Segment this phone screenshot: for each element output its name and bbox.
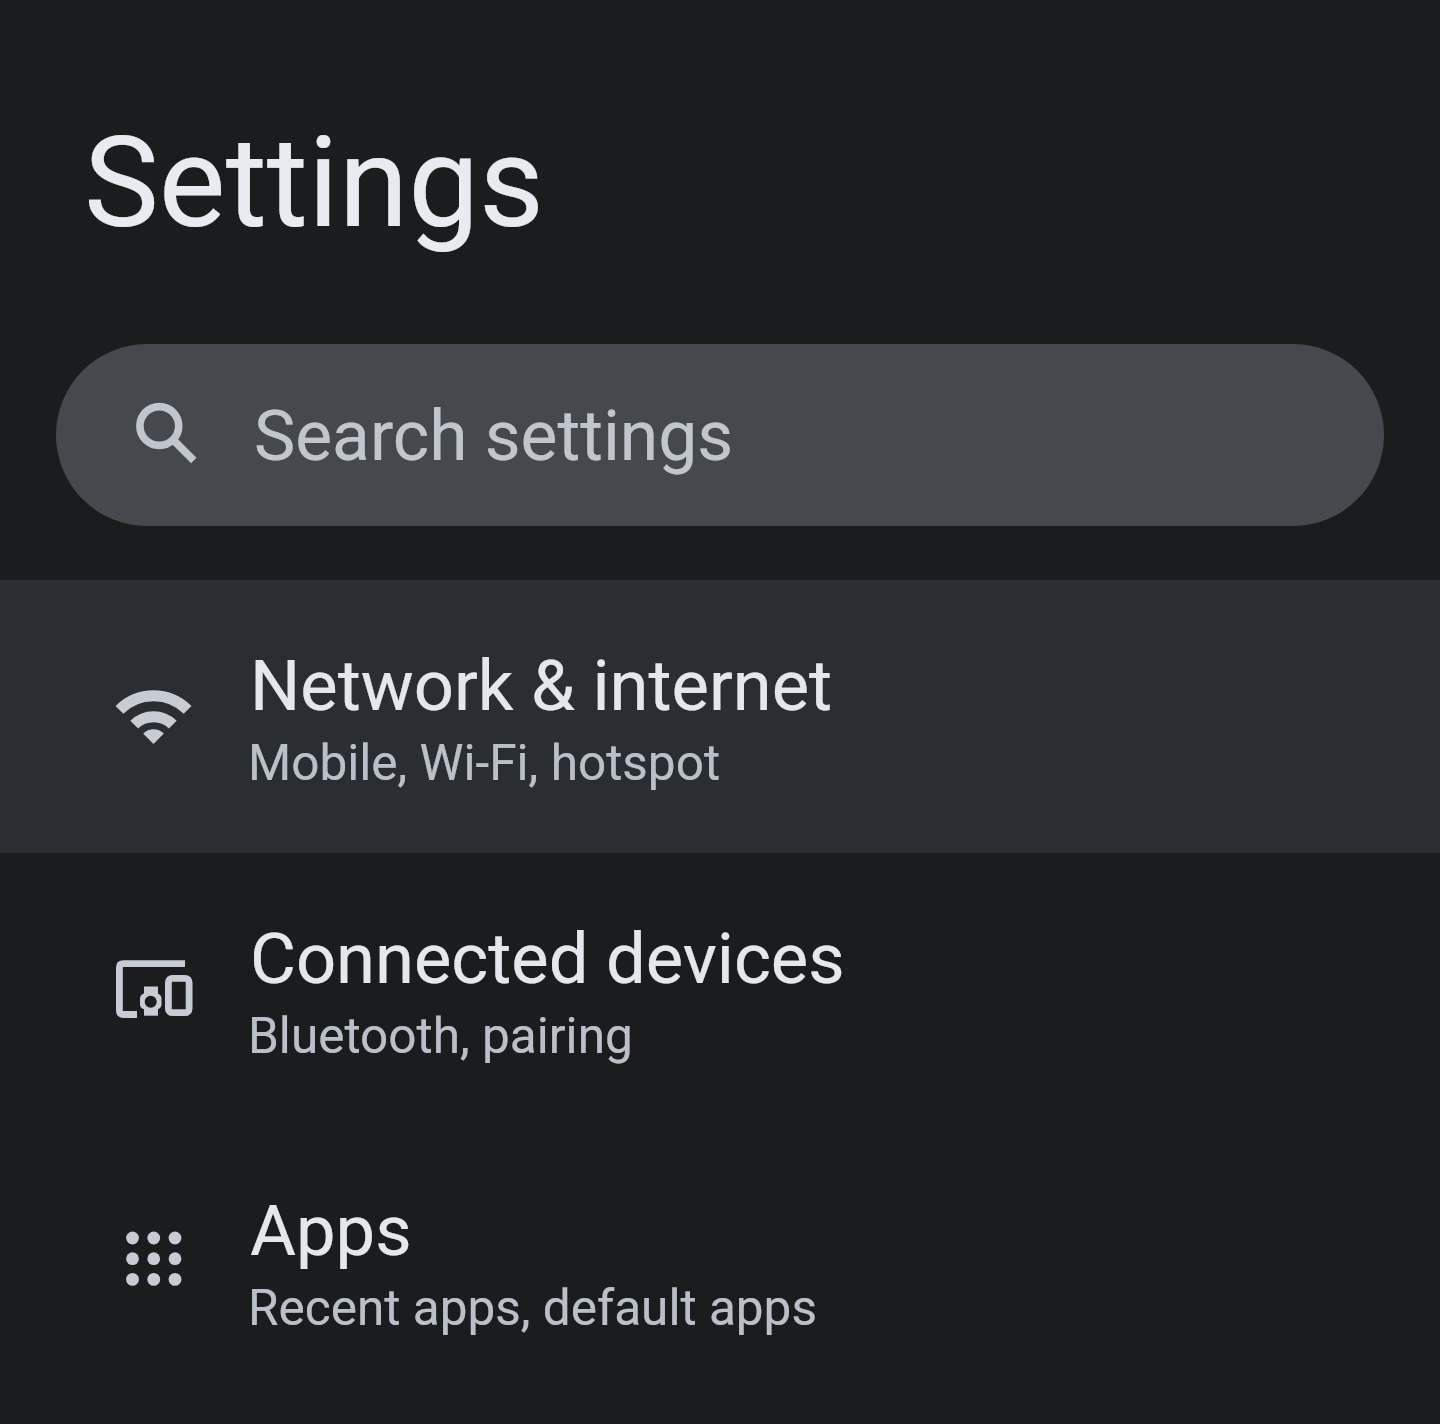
- button[interactable]: Connected devices: [0, 853, 1440, 1126]
- staticText: Mobile, Wi-Fi, hotspot: [248, 734, 721, 792]
- staticText: Bluetooth, pairing: [248, 1007, 633, 1065]
- staticText: Search settings: [254, 396, 734, 477]
- staticText: Recent apps, default apps: [248, 1279, 817, 1337]
- staticText: Connected devices: [250, 918, 845, 1001]
- button[interactable]: Apps: [0, 1125, 1440, 1398]
- button[interactable]: Network & internet: [0, 580, 1440, 853]
- staticText: Settings: [84, 109, 545, 257]
- button[interactable]: Search settings: [56, 344, 1384, 526]
- staticText: Network & internet: [250, 645, 833, 728]
- staticText: Apps: [250, 1190, 412, 1273]
